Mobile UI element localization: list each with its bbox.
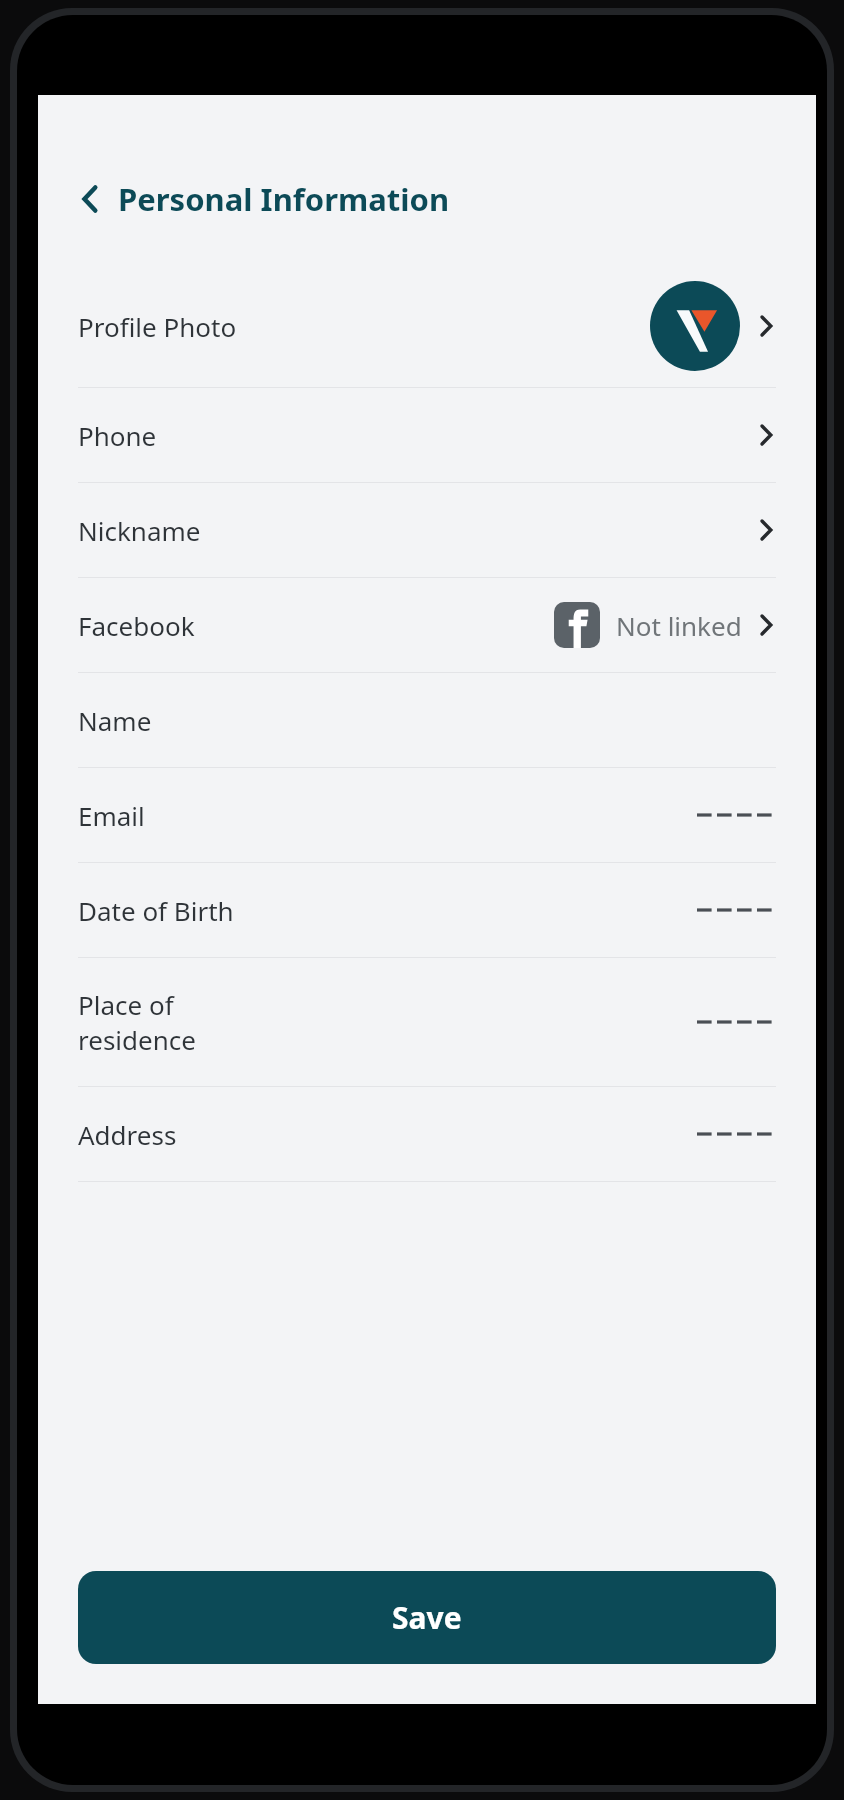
staticText: Facebook — [78, 608, 195, 643]
staticText: Address — [78, 1117, 177, 1152]
staticText: Not linked — [616, 608, 742, 643]
button[interactable]: Place of — [78, 958, 776, 1086]
button[interactable]: Profile Photo — [78, 265, 776, 387]
button[interactable]: Email — [78, 768, 776, 862]
staticText: Place of — [78, 987, 174, 1022]
button[interactable]: Facebook — [78, 578, 776, 672]
button[interactable]: Back — [78, 163, 816, 235]
button[interactable]: Phone — [78, 388, 776, 482]
button[interactable]: Save — [78, 1571, 776, 1664]
button[interactable]: Date of Birth — [78, 863, 776, 957]
staticText: Name — [78, 703, 152, 738]
button[interactable]: Address — [78, 1087, 776, 1181]
button[interactable]: Name — [78, 673, 776, 767]
staticText: residence — [78, 1022, 196, 1057]
staticText: Save — [392, 1597, 462, 1638]
staticText: Email — [78, 798, 145, 833]
staticText: Date of Birth — [78, 893, 234, 928]
staticText: Personal Information — [118, 178, 450, 220]
staticText: Phone — [78, 418, 157, 453]
button[interactable]: Nickname — [78, 483, 776, 577]
staticText: Profile Photo — [78, 309, 237, 344]
staticText: Nickname — [78, 513, 201, 548]
